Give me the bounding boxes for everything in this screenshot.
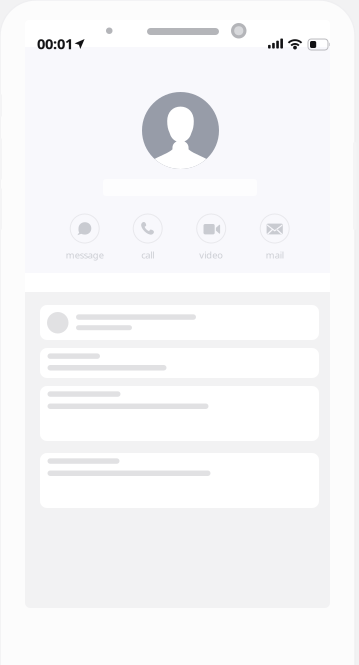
button[interactable]: video <box>25 20 81 69</box>
staticText: mail <box>266 249 284 261</box>
button[interactable]: call <box>25 20 81 69</box>
button[interactable]: message <box>25 20 81 69</box>
staticText: message <box>66 249 104 261</box>
staticText: 00:01 <box>37 34 73 53</box>
staticText: call <box>141 249 154 261</box>
button[interactable]: mail <box>25 20 81 69</box>
staticText: video <box>199 249 223 261</box>
